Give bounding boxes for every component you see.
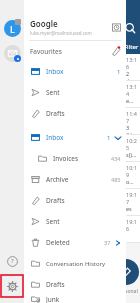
button[interactable]: Drafts — [24, 274, 126, 295]
staticText: 3 l… — [126, 131, 137, 134]
staticText: 485 — [111, 176, 121, 183]
staticText: Favourites — [30, 47, 109, 56]
staticText: o… — [126, 178, 134, 185]
staticText: 2 — [126, 70, 130, 77]
button[interactable]: Inbox — [24, 61, 126, 82]
button[interactable]: 13:14 — [0, 81, 140, 107]
staticText: Drafts — [46, 196, 123, 205]
button[interactable]: Add account — [3, 44, 21, 62]
staticText: Archive — [46, 175, 111, 184]
button[interactable]: 19:17 — [0, 189, 140, 215]
button[interactable]: Expand Deleted — [113, 238, 123, 248]
button[interactable]: Favourites — [24, 41, 126, 61]
staticText: luke.myer@mailnotused.com — [30, 30, 92, 36]
staticText: 37 — [104, 239, 111, 246]
button[interactable]: Conversation History — [24, 253, 126, 274]
button[interactable]: Junk — [24, 295, 126, 303]
button[interactable]: Deleted — [24, 232, 126, 253]
staticText: ? — [11, 257, 14, 265]
button[interactable]: Settings — [1, 275, 23, 297]
button[interactable]: 19:16 — [0, 216, 140, 242]
staticText: Invoices — [53, 154, 111, 163]
staticText: 3 — [126, 124, 130, 131]
button[interactable]: Drafts — [24, 190, 126, 211]
staticText: s()… — [126, 151, 137, 158]
staticText: Drafts — [46, 280, 123, 289]
staticText: 434 — [111, 155, 121, 162]
button[interactable]: Invoices — [24, 148, 126, 169]
button[interactable]: Compose new mail — [113, 259, 139, 285]
staticText: Filter — [124, 43, 139, 51]
staticText: 11:47 — [126, 110, 140, 124]
staticText: Sent — [46, 217, 123, 226]
button[interactable]: Help and feedback — [2, 251, 22, 271]
staticText: rsonal — [123, 288, 138, 295]
staticText: Google — [30, 18, 58, 29]
staticText: L — [10, 23, 15, 35]
staticText: e… — [126, 97, 134, 104]
button[interactable]: 10:19 — [0, 162, 140, 188]
staticText: Junk — [46, 295, 123, 303]
staticText: 19:17 — [126, 191, 140, 205]
staticText: d… — [126, 77, 134, 80]
staticText: Inbox — [46, 67, 117, 76]
staticText: Drafts — [46, 109, 123, 118]
staticText: 13:16 — [126, 56, 140, 70]
button[interactable]: Collapse Inbox — [113, 133, 123, 143]
staticText: Sent — [46, 88, 123, 97]
staticText: 13:14 — [126, 83, 140, 97]
staticText: es — [126, 205, 132, 212]
staticText: 1 — [117, 68, 121, 76]
button[interactable]: 13:16 — [0, 54, 140, 80]
button[interactable]: Current account Google — [3, 19, 21, 37]
button[interactable]: Archive — [24, 169, 126, 190]
staticText: 10:19 — [126, 164, 140, 178]
button[interactable]: Snooze notifications — [109, 20, 123, 34]
staticText: Inbox — [46, 133, 107, 142]
button[interactable]: Drafts — [24, 103, 126, 124]
button[interactable]: Inbox — [24, 127, 126, 148]
staticText: Deleted — [46, 238, 104, 247]
button[interactable]: 10:25 — [0, 135, 140, 161]
staticText: 19:16 — [126, 218, 140, 232]
button[interactable]: Edit favourites — [109, 44, 123, 58]
button[interactable]: Sent — [24, 211, 126, 232]
button[interactable]: Sent — [24, 82, 126, 103]
staticText: 1 — [107, 134, 111, 142]
button[interactable]: Google — [24, 16, 126, 38]
button[interactable]: 11:47 — [0, 108, 140, 134]
button[interactable]: Search — [122, 20, 138, 36]
staticText: Conversation History — [46, 260, 123, 268]
staticText: 10:25 — [126, 137, 140, 151]
